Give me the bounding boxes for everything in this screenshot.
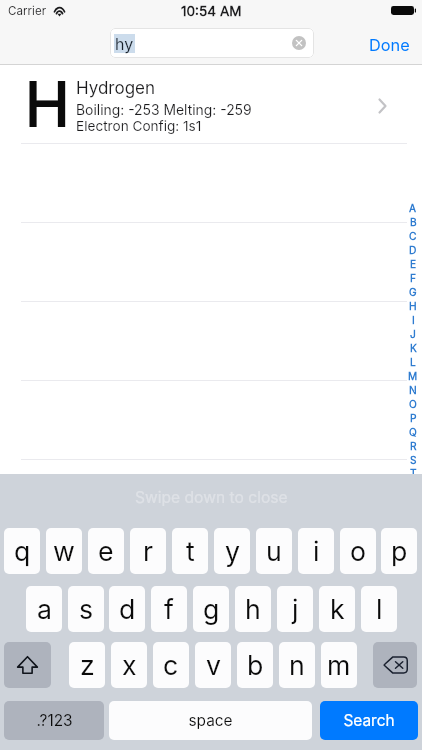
staticText: space [188,711,233,730]
button[interactable]: b [237,642,273,688]
staticText: P [410,412,417,424]
button[interactable]: l [361,586,397,632]
staticText: H [409,300,417,312]
staticText: d [119,593,136,625]
staticText: Carrier [8,4,47,18]
staticText: .?123 [36,711,73,730]
button[interactable]: m [321,642,357,688]
button[interactable]: f [151,586,187,632]
staticText: D [409,244,417,256]
staticText: Hydrogen [76,78,156,99]
staticText: J [410,328,416,340]
button[interactable]: Clear text [292,36,306,50]
staticText: v [206,649,221,681]
staticText: e [98,535,114,567]
staticText: Boiling: -253 Melting: -259 [76,102,252,119]
staticText: q [14,535,31,567]
staticText: l [376,593,383,625]
staticText: K [410,342,417,354]
button[interactable]: c [153,642,189,688]
button[interactable]: a [26,586,62,632]
staticText: Swipe down to close [135,488,288,507]
staticText: A [409,202,417,214]
staticText: T [410,467,417,474]
staticText: c [163,649,179,681]
button[interactable]: p [381,528,417,574]
button[interactable]: Backspace [373,642,417,688]
button[interactable]: n [279,642,315,688]
button[interactable]: A [404,201,422,474]
button[interactable]: w [46,528,82,574]
staticText: C [409,230,417,242]
staticText: M [408,370,418,382]
staticText: R [410,440,417,452]
staticText: j [292,593,299,625]
staticText: r [143,535,154,567]
staticText: F [410,272,417,284]
button[interactable]: Done [369,35,410,55]
staticText: s [79,593,94,625]
staticText: I [412,314,415,326]
button[interactable]: r [130,528,166,574]
button[interactable]: e [88,528,124,574]
staticText: H [25,68,70,141]
staticText: k [330,593,345,625]
button[interactable]: u [256,528,292,574]
button[interactable]: o [340,528,376,574]
button[interactable]: y [214,528,250,574]
staticText: y [225,535,240,567]
staticText: N [409,384,417,396]
staticText: x [122,649,137,681]
staticText: 10:54 AM [181,3,242,19]
button[interactable]: t [172,528,208,574]
staticText: b [247,649,264,681]
staticText: hy [115,34,134,53]
button[interactable]: d [109,586,145,632]
button[interactable]: k [319,586,355,632]
button[interactable]: v [195,642,231,688]
button[interactable]: z [69,642,105,688]
button[interactable]: j [277,586,313,632]
staticText: h [245,593,261,625]
staticText: L [410,356,416,368]
staticText: t [186,535,195,567]
staticText: a [37,593,52,625]
staticText: m [327,649,351,681]
button[interactable]: h [235,586,271,632]
staticText: f [164,593,174,625]
button[interactable]: Shift [4,642,51,688]
staticText: u [266,535,282,567]
button[interactable]: q [4,528,40,574]
staticText: p [391,535,408,567]
button[interactable]: H [0,65,422,144]
staticText: z [80,649,95,681]
button[interactable]: Search [320,701,418,740]
staticText: n [289,649,305,681]
staticText: Done [369,35,410,55]
staticText: B [410,216,417,228]
button[interactable]: i [298,528,334,574]
button[interactable]: hy [110,28,314,58]
staticText: w [53,535,75,567]
staticText: S [410,454,417,466]
button[interactable]: space [109,701,312,740]
button[interactable]: g [193,586,229,632]
staticText: o [350,535,367,567]
staticText: Search [343,711,395,730]
staticText: O [409,398,417,410]
staticText: i [313,535,320,567]
staticText: Q [409,426,417,438]
staticText: G [409,286,417,298]
staticText: g [203,593,220,625]
button[interactable]: x [111,642,147,688]
button[interactable]: s [68,586,104,632]
button[interactable]: .?123 [4,701,104,740]
staticText: E [410,258,417,270]
staticText: Electron Config: 1s1 [76,118,202,134]
